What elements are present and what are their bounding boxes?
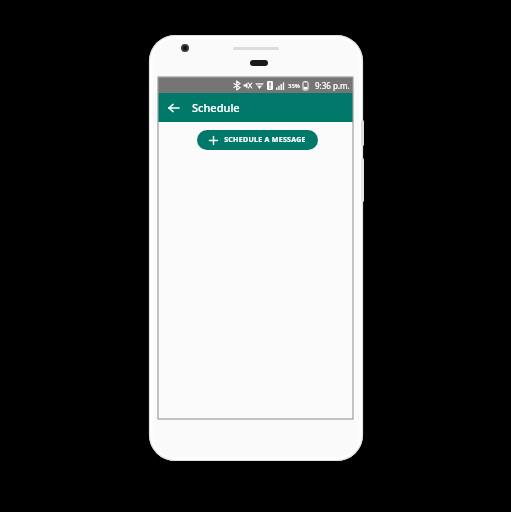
staticText: 9:36 p.m. — [315, 80, 350, 91]
button[interactable]: SCHEDULE A MESSAGE — [197, 130, 318, 150]
staticText: 35% — [288, 82, 300, 90]
staticText: SCHEDULE A MESSAGE — [224, 135, 306, 145]
button[interactable]: Back — [164, 98, 184, 118]
staticText: Schedule — [192, 100, 240, 115]
